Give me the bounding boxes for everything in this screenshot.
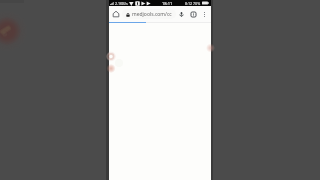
- button[interactable]: Home: [111, 9, 121, 19]
- button[interactable]: medjools.com/cc: [122, 9, 176, 19]
- button[interactable]: Voice search: [176, 9, 187, 19]
- staticText: 8:12 70%: [185, 1, 201, 6]
- staticText: 2.1KB/s: [115, 1, 128, 6]
- button[interactable]: Tabs: [187, 9, 200, 19]
- staticText: medjools.com/cc: [132, 11, 172, 18]
- staticText: 18:11: [162, 1, 173, 6]
- button[interactable]: More options: [200, 9, 209, 19]
